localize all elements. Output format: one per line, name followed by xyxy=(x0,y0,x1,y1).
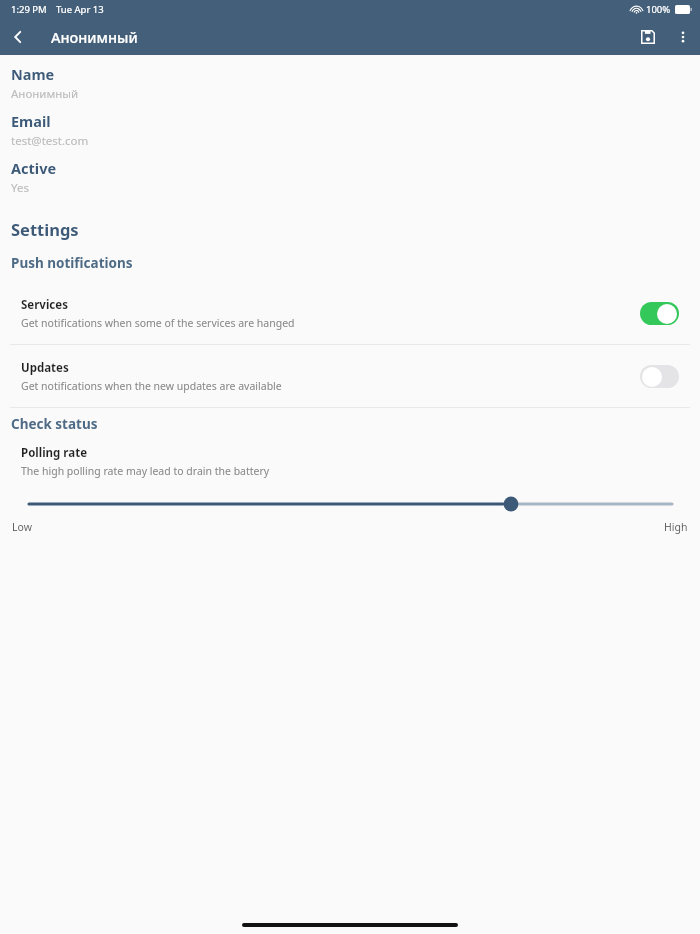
staticText: Settings xyxy=(11,218,79,240)
button[interactable]: Save xyxy=(630,19,666,55)
button[interactable]: Updates xyxy=(0,345,700,407)
staticText: Polling rate xyxy=(21,445,88,461)
staticText: 100% xyxy=(646,3,671,16)
staticText: Services xyxy=(21,297,68,313)
staticText: test@test.com xyxy=(11,133,89,149)
button[interactable]: Services xyxy=(0,282,700,344)
button[interactable]: On xyxy=(640,302,679,325)
staticText: Анонимный xyxy=(11,86,79,102)
staticText: Push notifications xyxy=(11,254,133,272)
button[interactable]: Off xyxy=(640,365,679,388)
staticText: High xyxy=(664,520,688,534)
staticText: The high polling rate may lead to drain … xyxy=(21,464,270,478)
staticText: Анонимный xyxy=(51,27,138,47)
staticText: Check status xyxy=(11,415,98,433)
button[interactable]: Back xyxy=(0,19,36,55)
staticText: Tue Apr 13 xyxy=(56,3,104,16)
staticText: Get notifications when the new updates a… xyxy=(21,379,282,393)
staticText: Email xyxy=(11,111,51,131)
staticText: Low xyxy=(12,520,32,534)
staticText: Yes xyxy=(11,180,29,196)
staticText: Active xyxy=(11,158,57,178)
button[interactable]: More options xyxy=(666,20,700,54)
staticText: Name xyxy=(11,64,55,84)
button[interactable]: Polling rate slider xyxy=(0,494,700,514)
staticText: 1:29 PM xyxy=(11,3,47,16)
staticText: Updates xyxy=(21,360,69,376)
staticText: Get notifications when some of the servi… xyxy=(21,316,295,330)
